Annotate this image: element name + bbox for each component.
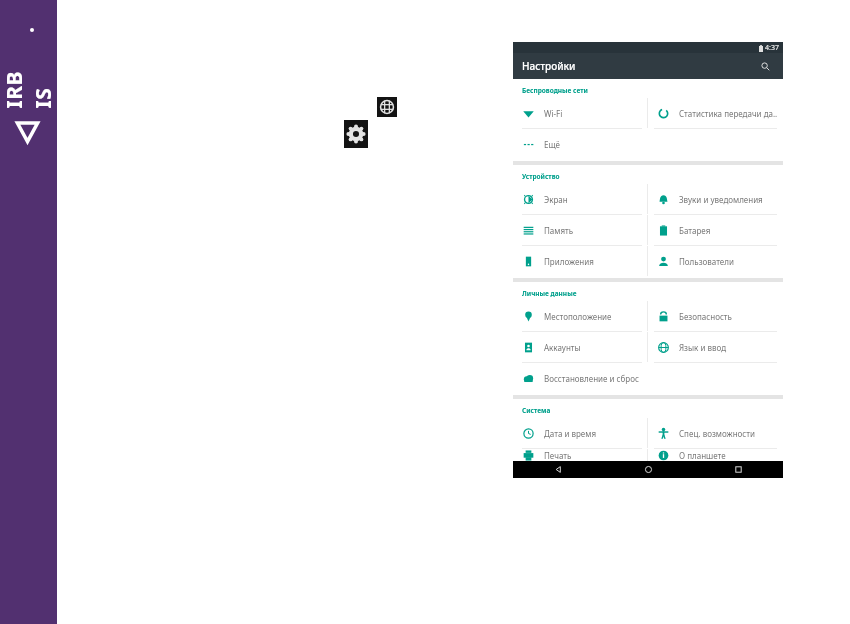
staticText: Память <box>544 225 574 236</box>
staticText: Батарея <box>679 225 711 236</box>
staticText: Аккаунты <box>544 342 581 353</box>
staticText: Система <box>522 406 551 415</box>
button[interactable]: Статистика передачи да.. <box>648 98 783 128</box>
staticText: Настройки <box>522 59 576 73</box>
button[interactable]: Безопасность <box>648 301 783 331</box>
button[interactable]: Экран <box>513 184 647 214</box>
button[interactable]: Home <box>603 461 693 478</box>
button[interactable]: Язык и ввод <box>648 332 783 362</box>
staticText: Wi-Fi <box>544 108 563 119</box>
staticText: Восстановление и сброс <box>544 373 639 384</box>
button[interactable]: Память <box>513 215 647 245</box>
staticText: Безопасность <box>679 311 732 322</box>
button[interactable]: All apps <box>377 97 397 117</box>
button[interactable]: Спец. возможности <box>648 418 783 448</box>
button[interactable]: Аккаунты <box>513 332 647 362</box>
button[interactable]: Местоположение <box>513 301 647 331</box>
staticText: Дата и время <box>544 428 597 439</box>
staticText: Личные данные <box>522 289 577 298</box>
staticText: Беспроводные сети <box>522 86 588 95</box>
button[interactable]: Печать <box>513 449 647 461</box>
staticText: О планшете <box>679 450 726 461</box>
staticText: Язык и ввод <box>679 342 727 353</box>
button[interactable]: Пользователи <box>648 246 783 276</box>
staticText: Спец. возможности <box>679 428 755 439</box>
button[interactable]: Звуки и уведомления <box>648 184 783 214</box>
button[interactable]: Ещё <box>513 129 647 159</box>
staticText: Ещё <box>544 139 561 150</box>
button[interactable]: Батарея <box>648 215 783 245</box>
button[interactable]: Recents <box>693 461 783 478</box>
button[interactable]: О планшете <box>648 449 783 461</box>
button[interactable]: Приложения <box>513 246 647 276</box>
button[interactable]: Search <box>756 57 774 75</box>
staticText: Пользователи <box>679 256 734 267</box>
button[interactable]: Wi-Fi <box>513 98 647 128</box>
staticText: Экран <box>544 194 568 205</box>
staticText: Статистика передачи да.. <box>679 108 778 119</box>
button[interactable]: Дата и время <box>513 418 647 448</box>
staticText: Звуки и уведомления <box>679 194 763 205</box>
staticText: Местоположение <box>544 311 612 322</box>
staticText: 4:37 <box>765 43 779 53</box>
button[interactable]: Settings <box>344 120 368 148</box>
staticText: Печать <box>544 450 572 461</box>
staticText: Устройство <box>522 172 560 181</box>
button[interactable]: Back <box>513 461 603 478</box>
staticText: IRBIS <box>0 63 57 108</box>
button[interactable]: Восстановление и сброс <box>513 363 647 393</box>
staticText: Приложения <box>544 256 594 267</box>
